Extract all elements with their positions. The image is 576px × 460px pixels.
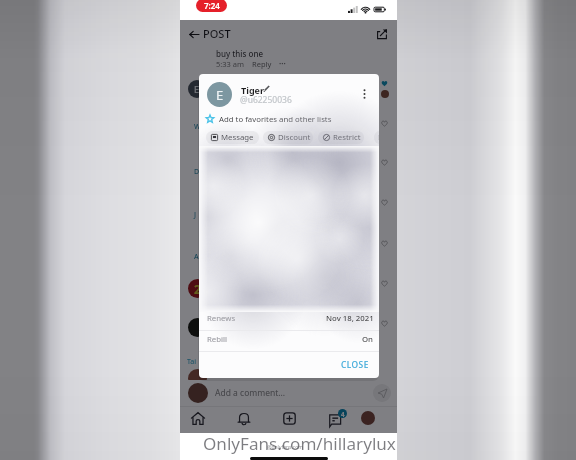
staticText: CLOSE	[341, 359, 369, 370]
staticText: @u62250036	[240, 94, 292, 106]
button[interactable]: Add to favorites and other lists	[199, 112, 379, 126]
button[interactable]: Home	[187, 407, 209, 429]
staticText: A	[194, 252, 199, 262]
staticText: 5:33 am	[216, 59, 245, 69]
button[interactable]: Restrict	[318, 131, 364, 144]
staticText: D	[194, 167, 200, 177]
button[interactable]: Send comment	[373, 384, 391, 402]
button[interactable]: New post	[278, 407, 300, 429]
staticText: W	[194, 122, 201, 132]
staticText: Tai	[187, 357, 197, 367]
staticText: buy this one	[216, 48, 263, 59]
button[interactable]: Back	[184, 24, 204, 44]
staticText: 7:24	[204, 0, 220, 11]
staticText: J	[194, 210, 197, 220]
staticText: •••	[279, 60, 286, 68]
staticText: Reply	[252, 59, 272, 69]
staticText: E	[216, 86, 224, 104]
button[interactable]: CLOSE	[335, 353, 375, 375]
staticText: E	[194, 83, 200, 95]
staticText: Restrict	[333, 132, 361, 143]
staticText: Tiger	[241, 84, 264, 96]
button[interactable]: Discount	[263, 131, 313, 144]
button[interactable]: Block	[374, 131, 379, 144]
button[interactable]: Notifications	[233, 407, 255, 429]
staticText: Message	[221, 132, 254, 143]
button[interactable]: Message	[206, 131, 259, 144]
staticText: Nov 18, 2021	[326, 313, 374, 324]
staticText: Add to favorites and other lists	[219, 114, 332, 125]
staticText: 2	[194, 281, 201, 297]
staticText: Add a comment...	[215, 387, 286, 399]
button[interactable]: Messages	[327, 407, 349, 429]
button[interactable]: More options	[356, 86, 372, 102]
staticText: On	[362, 334, 374, 345]
staticText: @onlyfans.com	[267, 444, 303, 451]
staticText: Rebill	[207, 334, 228, 345]
staticText: Discount	[278, 132, 311, 143]
staticText: POST	[203, 26, 231, 41]
staticText: Renews	[207, 313, 236, 324]
staticText: 4	[341, 410, 345, 418]
button[interactable]: Share	[372, 24, 392, 44]
staticText: OnlyFans.com/hillarylux	[203, 432, 396, 455]
button[interactable]: Profile	[357, 407, 379, 429]
